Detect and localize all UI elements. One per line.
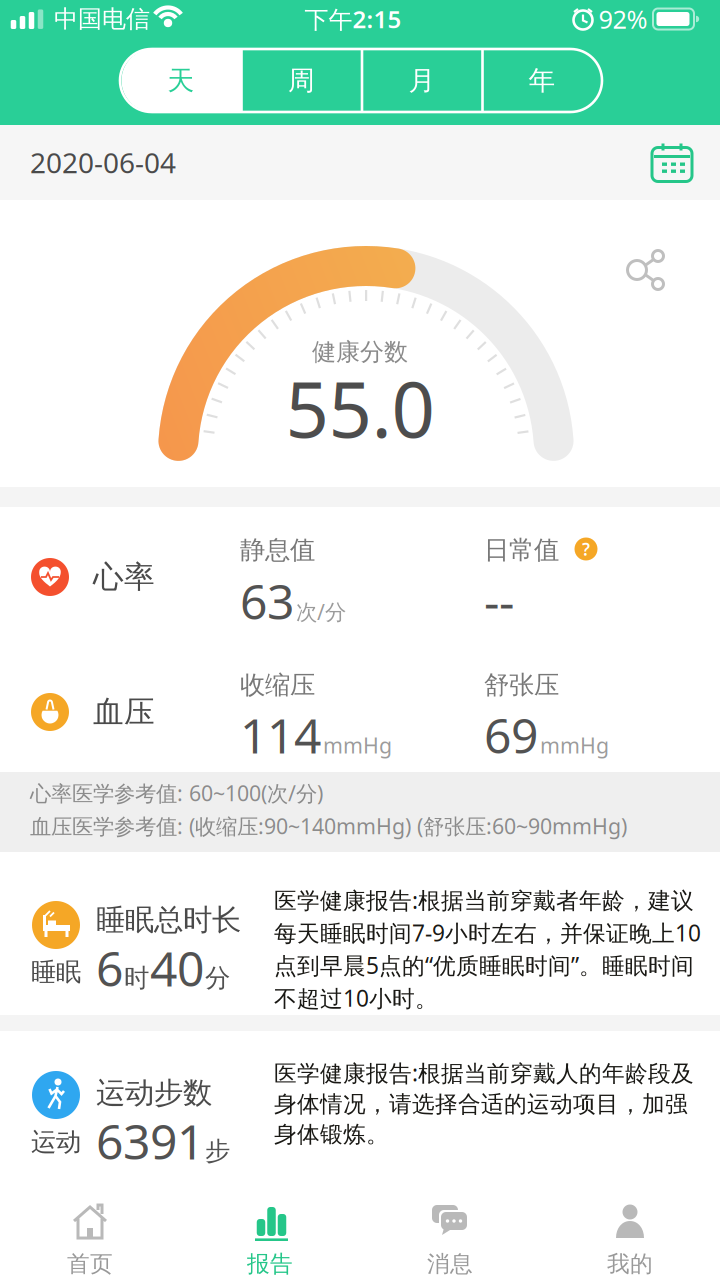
button[interactable]: 我的: [540, 1172, 720, 1281]
button[interactable]: [626, 248, 670, 292]
staticText: mmHg: [540, 731, 609, 759]
staticText: 消息: [427, 1250, 473, 1278]
button[interactable]: 年: [0, 49, 720, 112]
staticText: 运动步数: [96, 1075, 212, 1111]
button[interactable]: [650, 140, 694, 184]
staticText: 静息值: [240, 534, 315, 565]
staticText: 健康分数: [312, 337, 408, 367]
staticText: 分: [205, 963, 230, 994]
staticText: 6391: [96, 1109, 204, 1173]
button[interactable]: 报告: [180, 1172, 360, 1281]
staticText: --: [484, 569, 514, 633]
button[interactable]: 首页: [0, 1172, 180, 1281]
staticText: 月: [408, 64, 435, 97]
staticText: 血压医学参考值: (收缩压:90~140mmHg) (舒张压:60~90mmHg…: [30, 812, 627, 840]
button[interactable]: ?: [574, 537, 597, 560]
staticText: 心率医学参考值: 60~100(次/分): [30, 779, 323, 807]
staticText: 运动: [31, 1126, 81, 1157]
staticText: 69: [484, 703, 538, 767]
staticText: 收缩压: [240, 669, 315, 700]
staticText: 睡眠: [31, 956, 81, 987]
staticText: 医学健康报告:根据当前穿戴者年龄，建议每天睡眠时间7-9小时左右，并保证晚上10…: [274, 885, 701, 1013]
staticText: 天: [167, 64, 194, 97]
staticText: 舒张压: [484, 669, 559, 700]
staticText: 次/分: [296, 597, 346, 626]
staticText: 报告: [247, 1250, 293, 1278]
button[interactable]: 消息: [360, 1172, 540, 1281]
staticText: 周: [288, 64, 315, 97]
staticText: 2020-06-04: [30, 144, 176, 181]
staticText: 心率: [93, 558, 155, 596]
staticText: 睡眠总时长: [96, 902, 241, 938]
staticText: 我的: [607, 1250, 653, 1278]
staticText: ?: [582, 537, 590, 560]
button[interactable]: 周: [0, 49, 720, 112]
staticText: mmHg: [323, 731, 392, 759]
button[interactable]: 月: [0, 49, 720, 112]
staticText: 首页: [67, 1250, 113, 1278]
staticText: 55.0: [285, 357, 434, 458]
staticText: 血压: [93, 693, 155, 731]
staticText: 医学健康报告:根据当前穿戴人的年龄段及身体情况，请选择合适的运动项目，加强身体锻…: [274, 1058, 694, 1148]
staticText: 下午2:15: [304, 3, 401, 35]
staticText: 年: [528, 64, 555, 97]
staticText: 63: [240, 569, 294, 633]
staticText: 114: [240, 703, 321, 767]
staticText: 40: [150, 936, 204, 1000]
staticText: 时: [124, 963, 149, 994]
button[interactable]: 天: [0, 49, 720, 112]
staticText: 6: [96, 936, 123, 1000]
staticText: 步: [205, 1136, 230, 1167]
staticText: 中国电信: [54, 4, 150, 34]
staticText: 日常值: [484, 534, 559, 565]
staticText: 92%: [598, 2, 647, 36]
